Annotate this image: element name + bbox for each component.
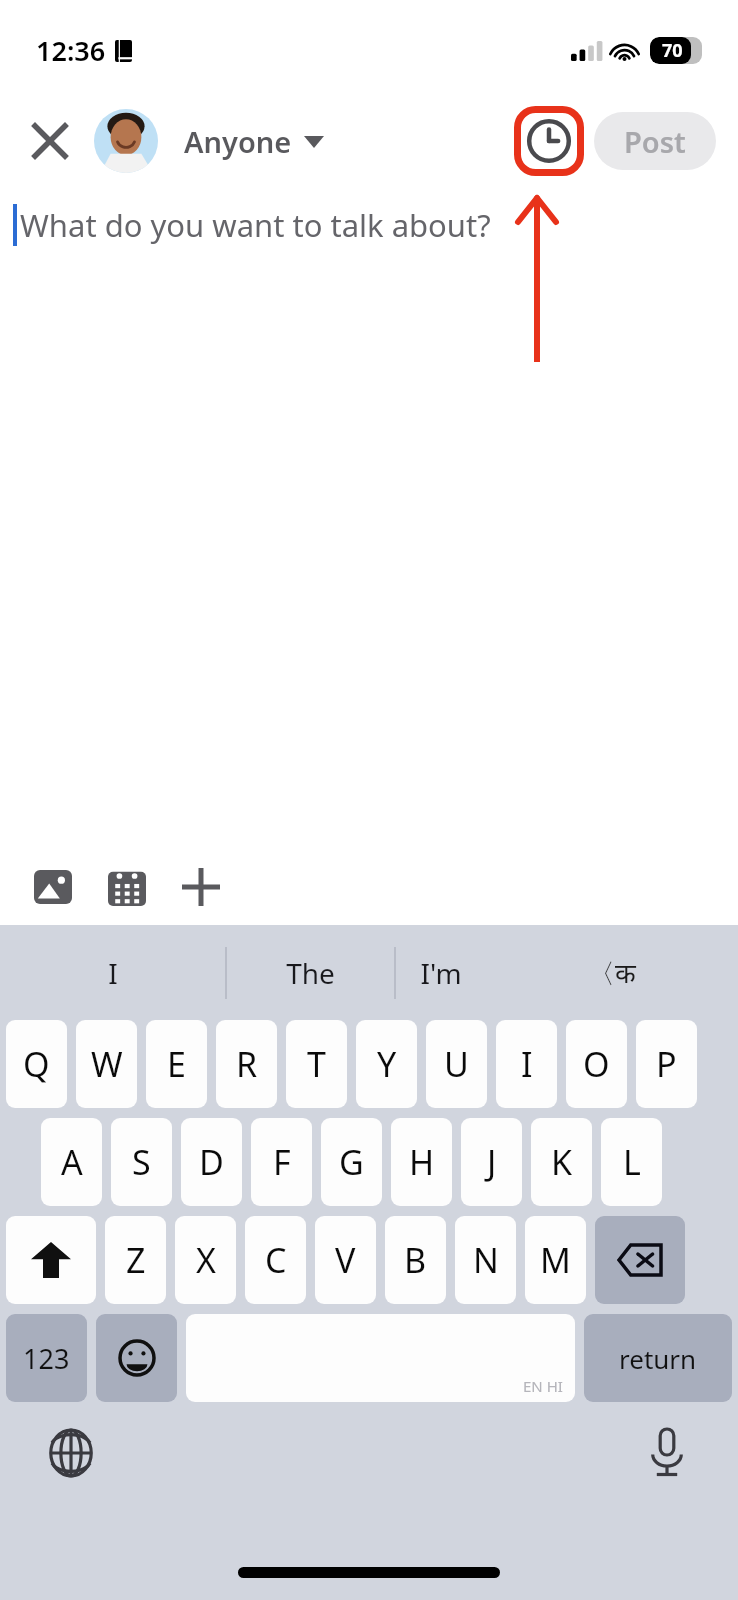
button[interactable]: Add photo bbox=[22, 856, 84, 918]
button[interactable]: Schedule post bbox=[516, 108, 582, 174]
button[interactable]: B bbox=[385, 1216, 446, 1304]
staticText: EN HI bbox=[523, 1376, 563, 1396]
staticText: C bbox=[265, 1237, 287, 1283]
button[interactable]: Close bbox=[22, 113, 78, 169]
staticText: I bbox=[108, 954, 118, 992]
staticText: M bbox=[540, 1237, 571, 1283]
button[interactable]: EN HI bbox=[186, 1314, 575, 1402]
button[interactable]: O bbox=[566, 1020, 627, 1108]
staticText: R bbox=[236, 1041, 258, 1087]
button[interactable]: Shift bbox=[6, 1216, 96, 1304]
button[interactable]: R bbox=[216, 1020, 277, 1108]
button[interactable]: I bbox=[496, 1020, 557, 1108]
button[interactable]: U bbox=[426, 1020, 487, 1108]
staticText: P bbox=[656, 1041, 677, 1087]
staticText: U bbox=[444, 1041, 469, 1087]
button[interactable]: T bbox=[286, 1020, 347, 1108]
staticText: Q bbox=[23, 1041, 50, 1087]
button[interactable]: D bbox=[181, 1118, 242, 1206]
staticText: 〈क bbox=[588, 954, 636, 991]
staticText: B bbox=[404, 1237, 427, 1283]
button[interactable]: 〈क bbox=[485, 925, 738, 1020]
button[interactable]: Y bbox=[356, 1020, 417, 1108]
button[interactable]: I'm bbox=[396, 925, 485, 1020]
button[interactable]: M bbox=[525, 1216, 586, 1304]
button[interactable]: A bbox=[41, 1118, 102, 1206]
button[interactable]: C bbox=[245, 1216, 306, 1304]
staticText: W bbox=[91, 1041, 123, 1087]
button[interactable]: H bbox=[391, 1118, 452, 1206]
staticText: 12:36 bbox=[36, 32, 106, 69]
button[interactable]: P bbox=[636, 1020, 697, 1108]
staticText: I bbox=[521, 1041, 533, 1087]
staticText: Post bbox=[624, 122, 686, 161]
staticText: H bbox=[409, 1139, 435, 1185]
button[interactable]: W bbox=[76, 1020, 137, 1108]
button[interactable]: Profile photo bbox=[94, 109, 158, 173]
button[interactable]: Add event bbox=[96, 856, 158, 918]
button[interactable]: Z bbox=[105, 1216, 166, 1304]
button[interactable]: Anyone bbox=[180, 116, 328, 167]
staticText: F bbox=[273, 1139, 291, 1185]
button[interactable]: Post bbox=[594, 112, 716, 170]
staticText: The bbox=[286, 954, 335, 992]
staticText: E bbox=[167, 1041, 186, 1087]
button[interactable]: 123 bbox=[6, 1314, 87, 1402]
button[interactable]: Emoji bbox=[96, 1314, 177, 1402]
staticText: X bbox=[196, 1237, 216, 1283]
button[interactable]: K bbox=[531, 1118, 592, 1206]
button[interactable]: J bbox=[461, 1118, 522, 1206]
staticText: What do you want to talk about? bbox=[20, 204, 491, 246]
button[interactable]: The bbox=[227, 925, 394, 1020]
button[interactable]: return bbox=[584, 1314, 732, 1402]
button[interactable]: Backspace bbox=[595, 1216, 685, 1304]
staticText: T bbox=[307, 1041, 326, 1087]
staticText: K bbox=[551, 1139, 573, 1185]
button[interactable]: Q bbox=[6, 1020, 67, 1108]
button[interactable]: V bbox=[315, 1216, 376, 1304]
button[interactable]: F bbox=[251, 1118, 312, 1206]
staticText: J bbox=[487, 1139, 497, 1185]
staticText: O bbox=[583, 1041, 610, 1087]
staticText: D bbox=[199, 1139, 224, 1185]
staticText: L bbox=[623, 1139, 641, 1185]
button[interactable]: More options bbox=[170, 856, 232, 918]
staticText: N bbox=[473, 1237, 499, 1283]
staticText: G bbox=[339, 1139, 364, 1185]
button[interactable]: Voice input bbox=[638, 1424, 696, 1482]
staticText: A bbox=[61, 1139, 83, 1185]
staticText: Y bbox=[377, 1041, 397, 1087]
button[interactable]: Change language bbox=[42, 1424, 100, 1482]
button[interactable]: I bbox=[0, 925, 225, 1020]
staticText: I'm bbox=[420, 954, 462, 992]
button[interactable]: G bbox=[321, 1118, 382, 1206]
button[interactable]: L bbox=[601, 1118, 662, 1206]
staticText: S bbox=[132, 1139, 151, 1185]
staticText: Z bbox=[126, 1237, 146, 1283]
button[interactable]: E bbox=[146, 1020, 207, 1108]
button[interactable]: N bbox=[455, 1216, 516, 1304]
staticText: Anyone bbox=[184, 122, 292, 161]
staticText: 70 bbox=[662, 38, 683, 63]
staticText: 123 bbox=[23, 1340, 70, 1377]
staticText: return bbox=[619, 1341, 697, 1376]
button[interactable]: S bbox=[111, 1118, 172, 1206]
button[interactable]: X bbox=[175, 1216, 236, 1304]
staticText: V bbox=[335, 1237, 356, 1283]
